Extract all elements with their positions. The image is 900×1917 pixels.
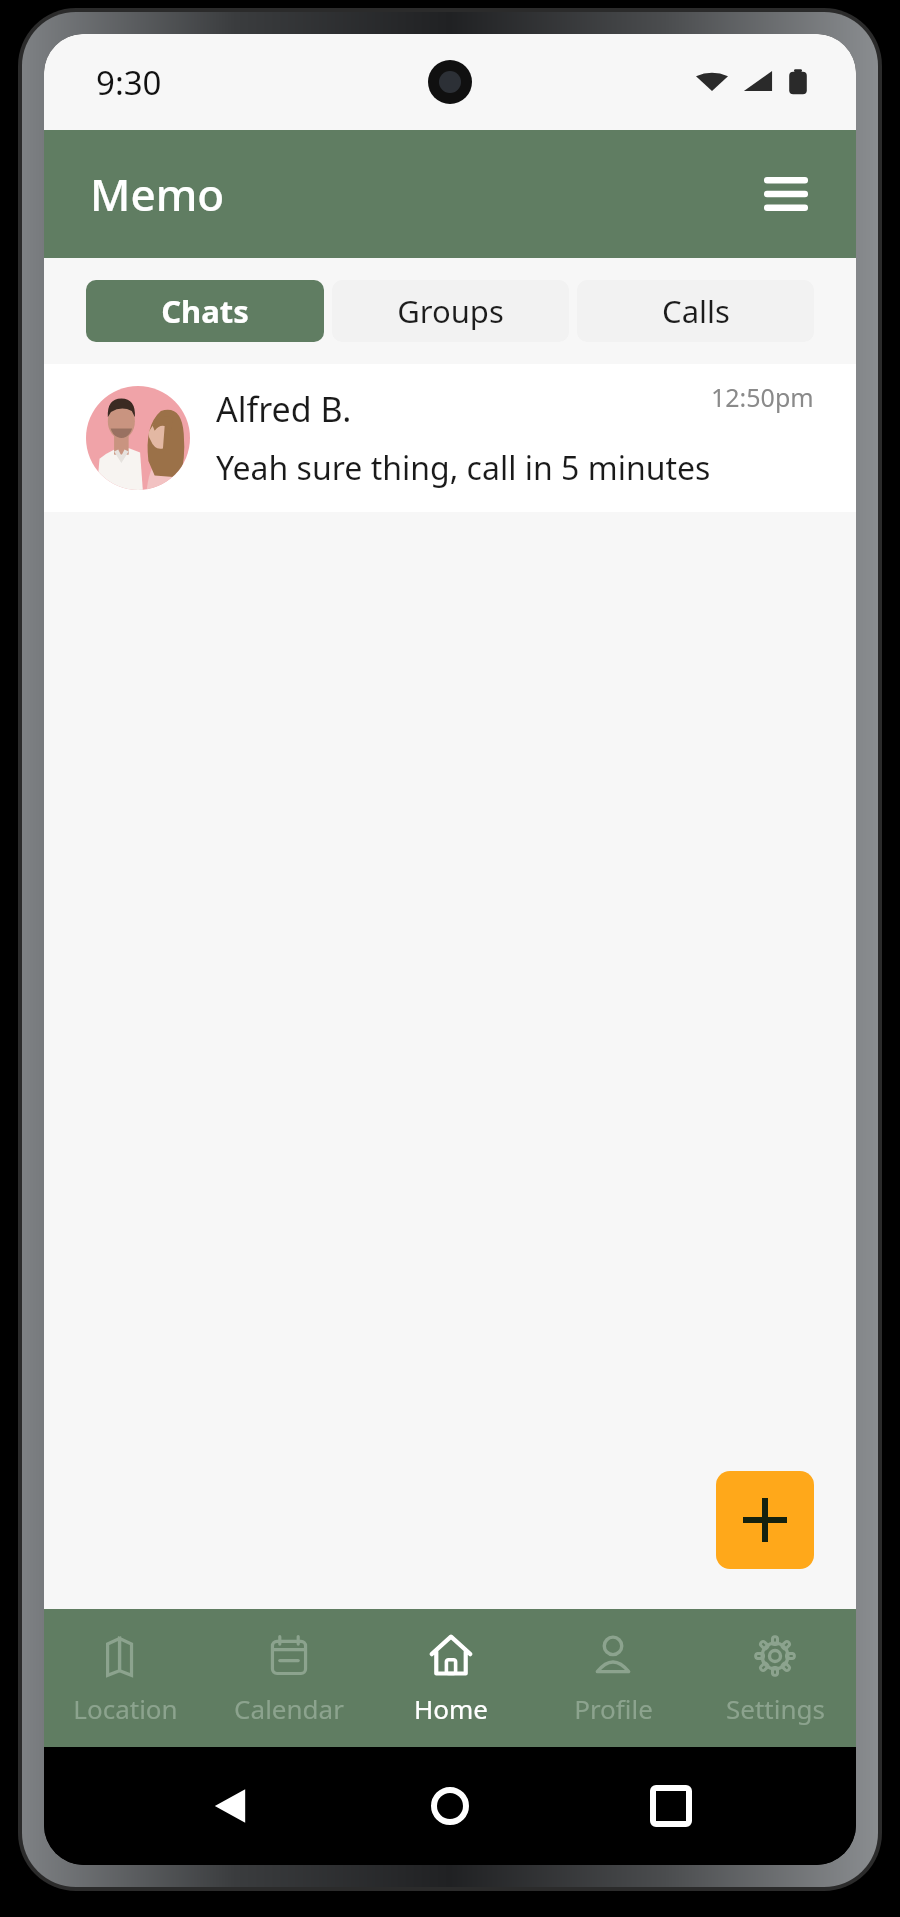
staticText: Location bbox=[73, 1691, 178, 1726]
staticText: Chats bbox=[161, 290, 249, 332]
staticText: 12:50pm bbox=[711, 380, 814, 414]
button[interactable]: Home bbox=[370, 1609, 532, 1747]
button[interactable]: Location bbox=[44, 1609, 207, 1747]
staticText: Settings bbox=[726, 1691, 825, 1726]
staticText: Profile bbox=[574, 1691, 653, 1726]
staticText: Calendar bbox=[234, 1691, 344, 1726]
button[interactable]: Home bbox=[415, 1771, 485, 1841]
staticText: 9:30 bbox=[96, 60, 162, 105]
button[interactable]: Calls bbox=[577, 280, 814, 342]
button[interactable]: Groups bbox=[332, 280, 569, 342]
button[interactable]: Menu bbox=[754, 162, 818, 226]
button[interactable]: Settings bbox=[694, 1609, 856, 1747]
button[interactable]: Profile bbox=[532, 1609, 694, 1747]
button[interactable]: Add bbox=[716, 1471, 814, 1569]
staticText: Groups bbox=[397, 290, 504, 332]
staticText: Home bbox=[414, 1691, 488, 1726]
button[interactable]: Chats bbox=[86, 280, 324, 342]
staticText: Yeah sure thing, call in 5 minutes bbox=[216, 446, 711, 490]
button[interactable]: Alfred B. bbox=[44, 364, 856, 512]
staticText: Memo bbox=[90, 164, 225, 224]
button[interactable]: Calendar bbox=[207, 1609, 370, 1747]
button[interactable]: Recents bbox=[636, 1771, 706, 1841]
staticText: Alfred B. bbox=[216, 386, 352, 432]
button[interactable]: Back bbox=[195, 1771, 265, 1841]
staticText: Calls bbox=[662, 290, 730, 332]
